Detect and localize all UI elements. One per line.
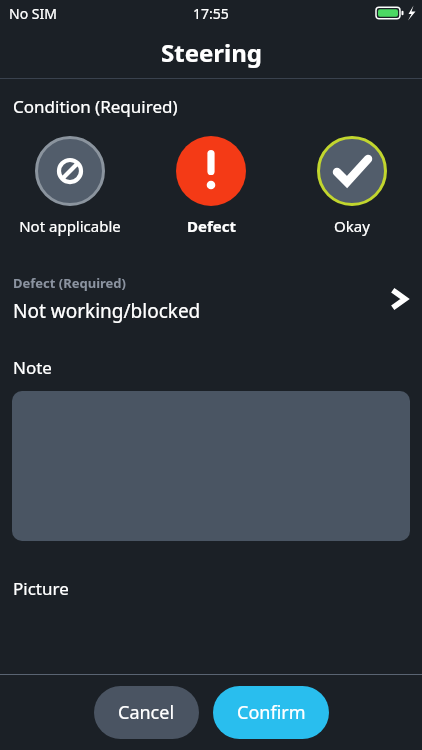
staticText: Picture [13, 577, 69, 600]
staticText: Defect (Required) [13, 274, 126, 292]
button[interactable]: Cancel [94, 686, 199, 739]
button[interactable]: Okay [317, 136, 387, 236]
staticText: Cancel [118, 700, 175, 725]
other: Defect [176, 136, 246, 206]
button[interactable]: Not applicable [19, 136, 121, 236]
button[interactable]: Defect (Required) [0, 272, 422, 326]
staticText: Confirm [237, 700, 306, 725]
staticText: Okay [334, 216, 370, 236]
staticText: Steering [161, 36, 262, 69]
other: Open defect list [391, 287, 409, 311]
button[interactable]: Defect [176, 136, 246, 236]
staticText: Defect [187, 216, 236, 236]
staticText: No SIM [9, 4, 57, 23]
staticText: Condition (Required) [13, 95, 178, 118]
staticText: 17:55 [193, 4, 229, 23]
other: Not applicable [35, 136, 105, 206]
button[interactable]: Confirm [213, 686, 329, 739]
staticText: Note [13, 356, 52, 379]
other: Okay [317, 136, 387, 206]
staticText: Not working/blocked [13, 298, 201, 324]
staticText: Not applicable [19, 216, 121, 236]
